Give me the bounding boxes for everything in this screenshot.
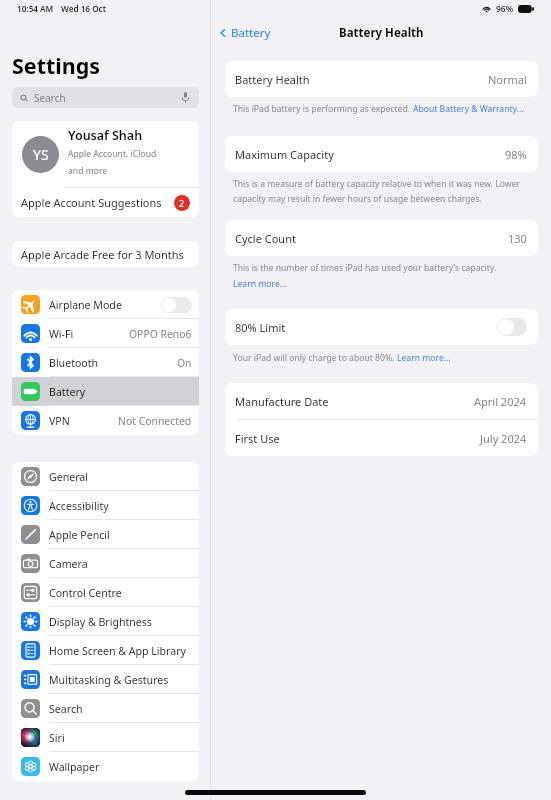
- button[interactable]: YS: [12, 121, 199, 187]
- staticText: Battery Health: [235, 72, 310, 87]
- button[interactable]: Maximum Capacity: [225, 136, 538, 172]
- staticText: This is the number of times iPad has use…: [233, 262, 497, 274]
- button[interactable]: Wi-Fi: [12, 319, 199, 348]
- button[interactable]: Control Centre: [12, 578, 199, 607]
- staticText: 130: [508, 231, 527, 246]
- button[interactable]: Multitasking & Gestures: [12, 665, 199, 694]
- button[interactable]: Home Screen & App Library: [12, 636, 199, 665]
- staticText: Cycle Count: [235, 231, 296, 246]
- staticText: Siri: [49, 731, 65, 745]
- staticText: Multitasking & Gestures: [49, 673, 169, 687]
- button[interactable]: Display & Brightness: [12, 607, 199, 636]
- button[interactable]: Search: [12, 87, 199, 108]
- button[interactable]: Voice search: [179, 90, 192, 105]
- button[interactable]: Airplane Mode toggle: [161, 297, 192, 313]
- staticText: Your iPad will only charge to about 80%.: [233, 352, 397, 364]
- button[interactable]: Apple Account Suggestions: [12, 188, 199, 217]
- staticText: Control Centre: [49, 586, 122, 600]
- staticText: Home Screen & App Library: [49, 644, 186, 658]
- staticText: Camera: [49, 557, 88, 571]
- staticText: Settings: [12, 51, 101, 80]
- staticText: Accessibility: [49, 499, 109, 513]
- staticText: Battery: [231, 25, 271, 41]
- staticText: April 2024: [474, 394, 527, 409]
- staticText: 80% Limit: [235, 320, 286, 335]
- staticText: July 2024: [480, 431, 527, 446]
- button[interactable]: General: [12, 462, 199, 491]
- staticText: General: [49, 470, 89, 484]
- button[interactable]: About Battery & Warranty...: [413, 103, 524, 115]
- staticText: Bluetooth: [49, 356, 99, 370]
- staticText: Battery: [49, 385, 86, 399]
- staticText: Maximum Capacity: [235, 147, 334, 162]
- staticText: Search: [34, 91, 66, 105]
- button[interactable]: Airplane Mode: [12, 290, 199, 319]
- staticText: Apple Arcade Free for 3 Months: [21, 247, 184, 262]
- staticText: Display & Brightness: [49, 615, 152, 629]
- staticText: Apple Pencil: [49, 528, 110, 542]
- button[interactable]: Manufacture Date: [225, 383, 538, 419]
- button[interactable]: Accessibility: [12, 491, 199, 520]
- staticText: Apple Account, iCloud and more: [68, 148, 157, 177]
- button[interactable]: Cycle Count: [225, 220, 538, 256]
- button[interactable]: Learn more...: [397, 352, 451, 364]
- staticText: 96%: [496, 3, 514, 15]
- staticText: On: [177, 356, 192, 370]
- button[interactable]: Apple Pencil: [12, 520, 199, 549]
- button[interactable]: First Use: [225, 420, 538, 456]
- staticText: 98%: [505, 147, 527, 162]
- button[interactable]: Bluetooth: [12, 348, 199, 377]
- button[interactable]: Search: [12, 694, 199, 723]
- staticText: Airplane Mode: [49, 298, 122, 312]
- button[interactable]: Wallpaper: [12, 752, 199, 781]
- staticText: Wallpaper: [49, 760, 100, 774]
- button[interactable]: Battery: [12, 377, 199, 406]
- button[interactable]: VPN: [12, 406, 199, 435]
- staticText: This iPad battery is performing as expec…: [233, 103, 413, 115]
- staticText: 10:54 AM: [17, 3, 54, 14]
- button[interactable]: Battery Health: [225, 61, 538, 97]
- button[interactable]: Siri: [12, 723, 199, 752]
- staticText: VPN: [49, 414, 70, 428]
- staticText: Wi-Fi: [49, 327, 74, 341]
- button[interactable]: Apple Arcade Free for 3 Months: [12, 241, 199, 267]
- staticText: OPPO Reno6: [129, 327, 192, 341]
- staticText: Battery Health: [339, 25, 424, 41]
- button[interactable]: 80% Limit: [225, 309, 538, 345]
- button[interactable]: Battery: [211, 23, 277, 43]
- staticText: First Use: [235, 431, 280, 446]
- staticText: YS: [33, 145, 49, 164]
- staticText: Apple Account Suggestions: [21, 195, 162, 210]
- staticText: Search: [49, 702, 83, 716]
- staticText: This is a measure of battery capacity re…: [233, 178, 533, 204]
- staticText: 2: [179, 197, 185, 209]
- button[interactable]: 80% Limit toggle: [497, 318, 527, 336]
- staticText: Not Connected: [118, 414, 192, 428]
- button[interactable]: Camera: [12, 549, 199, 578]
- staticText: Normal: [488, 72, 527, 87]
- staticText: Manufacture Date: [235, 394, 329, 409]
- staticText: Wed 16 Oct: [61, 3, 107, 14]
- staticText: Learn more...: [233, 278, 287, 290]
- staticText: Yousaf Shah: [68, 127, 143, 144]
- button[interactable]: Learn more...: [233, 278, 287, 290]
